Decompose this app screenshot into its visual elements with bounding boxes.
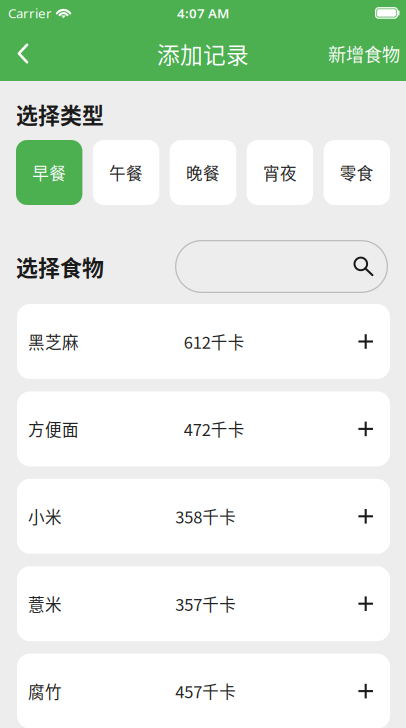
staticText: 472千卡 [184,417,245,441]
staticText: 零食 [340,160,374,184]
button[interactable]: 晚餐 [170,140,236,205]
staticText: Carrier [8,4,52,22]
staticText: 添加记录 [157,37,249,70]
staticText: 薏米 [28,592,62,616]
staticText: 612千卡 [184,329,245,353]
staticText: 选择食物 [16,251,104,282]
staticText: 457千卡 [175,679,236,703]
staticText: 358千卡 [175,504,236,528]
staticText: 新增食物 [328,40,400,67]
staticText: 腐竹 [28,679,62,703]
staticText: 黑芝麻 [28,329,79,353]
button[interactable]: 新增食物 [325,30,403,77]
staticText: 早餐 [32,160,66,184]
button[interactable]: 小米 [17,479,390,554]
staticText: 午餐 [109,160,143,184]
staticText: 选择类型 [16,98,104,130]
button[interactable]: 方便面 [17,391,390,466]
button[interactable]: 腐竹 [17,654,390,728]
button[interactable]: 午餐 [93,140,159,205]
staticText: 357千卡 [175,592,236,616]
staticText: 4:07 AM [177,4,229,22]
button[interactable]: 返回 [3,30,43,77]
button[interactable]: 零食 [324,140,390,205]
button[interactable]: 宵夜 [247,140,313,205]
button[interactable]: 黑芝麻 [17,304,390,379]
staticText: 晚餐 [186,160,220,184]
staticText: 方便面 [28,417,79,441]
staticText: 小米 [28,504,62,528]
button[interactable]: 搜索食物 [175,240,388,293]
button[interactable]: 早餐 [16,140,82,205]
staticText: 宵夜 [263,160,297,184]
button[interactable]: 薏米 [17,566,390,641]
